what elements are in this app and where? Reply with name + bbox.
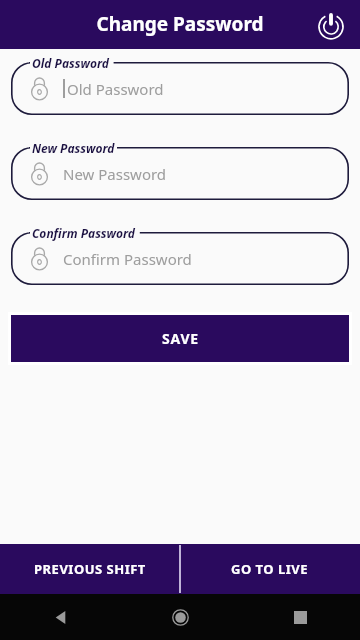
button[interactable]: Home <box>120 594 240 640</box>
staticText: Confirm Password <box>63 249 192 269</box>
staticText: Old Password <box>32 55 109 71</box>
button[interactable]: Back <box>0 594 120 640</box>
staticText: New Password <box>32 140 115 156</box>
staticText: GO TO LIVE <box>231 560 309 578</box>
button[interactable]: Power / Logout <box>312 6 350 44</box>
button[interactable]: SAVE <box>11 315 349 362</box>
staticText: SAVE <box>162 329 199 348</box>
button[interactable]: New Password <box>11 147 349 200</box>
button[interactable]: Old Password <box>11 62 349 115</box>
staticText: Change Password <box>96 11 264 37</box>
button[interactable]: GO TO LIVE <box>180 544 360 594</box>
button[interactable]: Recent apps <box>240 594 360 640</box>
staticText: Confirm Password <box>32 225 135 241</box>
button[interactable]: PREVIOUS SHIFT <box>0 544 180 594</box>
staticText: Old Password <box>67 79 164 99</box>
staticText: PREVIOUS SHIFT <box>34 560 146 578</box>
staticText: New Password <box>63 164 167 184</box>
button[interactable]: Confirm Password <box>11 232 349 285</box>
